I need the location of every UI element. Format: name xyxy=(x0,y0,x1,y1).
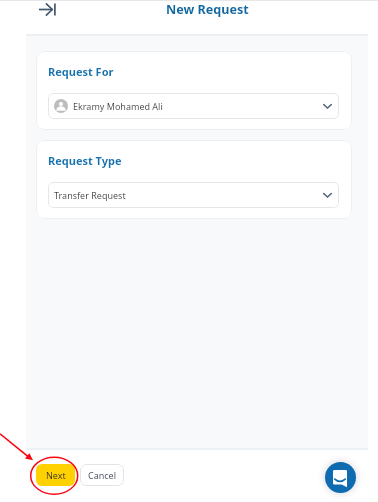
button[interactable]: Open chat xyxy=(325,462,356,493)
button[interactable]: Next xyxy=(36,464,75,486)
button[interactable]: Transfer Request xyxy=(48,182,339,208)
staticText: Request For xyxy=(48,64,114,79)
staticText: Cancel xyxy=(88,469,117,481)
button[interactable]: Logout xyxy=(32,0,62,20)
staticText: New Request xyxy=(166,1,249,18)
staticText: Transfer Request xyxy=(54,189,126,201)
staticText: Ekramy Mohamed Ali xyxy=(73,100,163,112)
button[interactable]: Ekramy Mohamed Ali xyxy=(48,93,339,119)
staticText: Request Type xyxy=(48,153,122,168)
staticText: Next xyxy=(46,469,66,481)
button[interactable]: Cancel xyxy=(80,464,124,486)
